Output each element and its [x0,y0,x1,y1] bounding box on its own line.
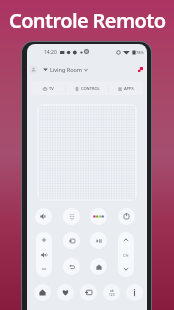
staticText: APPS [124,86,134,91]
button[interactable]: Power [118,208,135,225]
staticText: Living Room [50,66,82,73]
button[interactable]: Back [63,258,80,275]
staticText: ab [110,289,114,293]
staticText: Controle Remoto [9,7,166,34]
button[interactable]: Account [29,65,38,74]
button[interactable]: Living Room [42,65,89,74]
button[interactable]: TV [31,82,65,95]
staticText: 78% [136,50,144,55]
button[interactable]: Favorites [57,284,74,301]
button[interactable]: Touchpad [37,104,137,201]
button[interactable]: Mute [35,208,52,225]
staticText: CONTROL [81,86,100,91]
staticText: TV [49,86,54,91]
button[interactable]: CH [119,248,133,262]
button[interactable]: Channel down [119,262,133,276]
button[interactable]: Color buttons [90,208,107,225]
button[interactable]: Volume down [37,262,51,276]
button[interactable]: Play pause [90,232,107,249]
button[interactable]: Cast [136,65,145,74]
button[interactable]: Volume up [37,233,51,247]
button[interactable]: Dialpad [63,208,80,225]
button[interactable]: Keypad [103,284,120,301]
button[interactable]: Home [34,284,51,301]
button[interactable]: Channel up [119,233,133,247]
button[interactable]: Home [90,258,107,275]
button[interactable]: Input source [63,232,80,249]
button[interactable]: Mute [37,248,51,262]
staticText: 123 [109,293,115,297]
staticText: 14:20 [44,49,57,56]
button[interactable]: Remote [80,284,97,301]
button[interactable]: APPS [109,82,143,95]
staticText: CH [123,253,129,258]
button[interactable]: Info [126,284,143,301]
button[interactable]: CONTROL [66,82,108,95]
